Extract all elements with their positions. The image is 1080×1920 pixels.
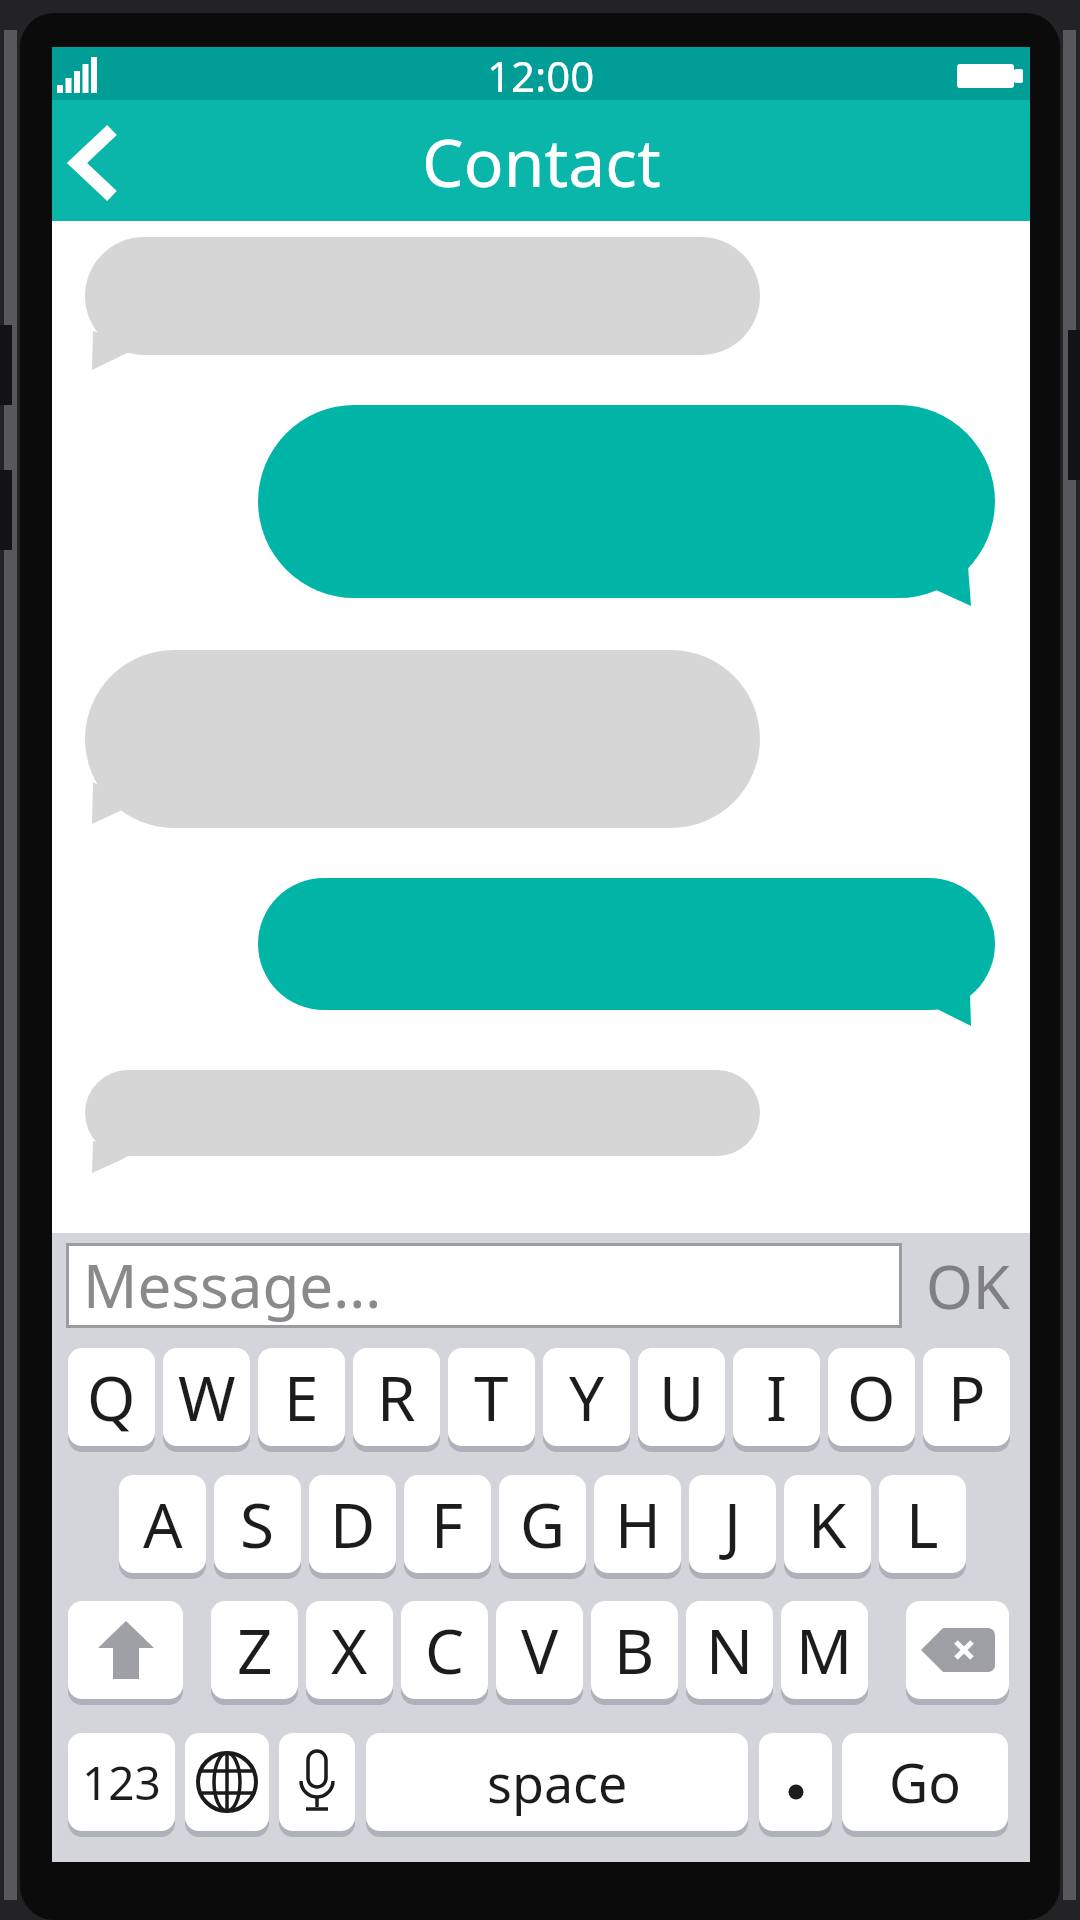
staticText: O [847, 1355, 896, 1439]
staticText: B [614, 1608, 655, 1692]
button[interactable]: G [499, 1475, 586, 1573]
staticText: Q [87, 1355, 136, 1439]
staticText: M [796, 1608, 853, 1692]
staticText: OK [926, 1245, 1010, 1327]
staticText: F [431, 1482, 464, 1566]
button[interactable]: J [689, 1475, 776, 1573]
button[interactable]: W [163, 1348, 250, 1446]
staticText: X [331, 1608, 368, 1692]
button[interactable]: S [214, 1475, 301, 1573]
button[interactable]: A [119, 1475, 206, 1573]
button[interactable] [279, 1733, 355, 1831]
button[interactable]: OK [918, 1243, 1018, 1328]
button[interactable]: O [828, 1348, 915, 1446]
staticText: Go [889, 1745, 961, 1819]
staticText: P [948, 1355, 986, 1439]
staticText: Contact [422, 116, 661, 206]
button[interactable] [185, 1733, 269, 1831]
button[interactable]: L [879, 1475, 966, 1573]
button[interactable]: K [784, 1475, 871, 1573]
button[interactable]: E [258, 1348, 345, 1446]
staticText: R [377, 1355, 416, 1439]
button[interactable]: D [309, 1475, 396, 1573]
button[interactable] [68, 1601, 183, 1699]
staticText: V [521, 1608, 559, 1692]
staticText: Y [569, 1355, 605, 1439]
staticText: S [240, 1482, 275, 1566]
button[interactable]: Z [211, 1601, 298, 1699]
button[interactable]: 123 [68, 1733, 175, 1831]
staticText: J [724, 1482, 741, 1566]
button[interactable] [75, 130, 112, 196]
staticText: 123 [82, 1751, 161, 1814]
staticText: I [766, 1355, 788, 1439]
button[interactable]: N [686, 1601, 773, 1699]
button[interactable]: P [923, 1348, 1010, 1446]
staticText: T [474, 1355, 509, 1439]
button[interactable]: R [353, 1348, 440, 1446]
button[interactable]: space [366, 1733, 748, 1831]
button[interactable] [906, 1601, 1009, 1699]
staticText: W [178, 1355, 236, 1439]
button[interactable]: V [496, 1601, 583, 1699]
staticText: Message... [83, 1244, 382, 1323]
staticText: U [659, 1355, 705, 1439]
staticText: C [425, 1608, 465, 1692]
button[interactable]: F [404, 1475, 491, 1573]
button[interactable]: I [733, 1348, 820, 1446]
button[interactable]: C [401, 1601, 488, 1699]
staticText: E [284, 1355, 319, 1439]
staticText: L [906, 1482, 939, 1566]
staticText: D [330, 1482, 376, 1566]
staticText: space [487, 1747, 628, 1818]
staticText: K [808, 1482, 847, 1566]
button[interactable]: T [448, 1348, 535, 1446]
staticText: G [520, 1482, 566, 1566]
button[interactable]: Q [68, 1348, 155, 1446]
button[interactable]: Message... [69, 1246, 899, 1325]
staticText: N [706, 1608, 754, 1692]
button[interactable]: B [591, 1601, 678, 1699]
staticText: A [143, 1482, 183, 1566]
button[interactable] [759, 1733, 832, 1831]
button[interactable]: U [638, 1348, 725, 1446]
staticText: 12:00 [487, 47, 595, 100]
staticText: H [615, 1482, 661, 1566]
button[interactable]: H [594, 1475, 681, 1573]
button[interactable]: M [781, 1601, 868, 1699]
button[interactable]: Y [543, 1348, 630, 1446]
staticText: Z [237, 1608, 273, 1692]
button[interactable]: Go [842, 1733, 1008, 1831]
button[interactable]: X [306, 1601, 393, 1699]
